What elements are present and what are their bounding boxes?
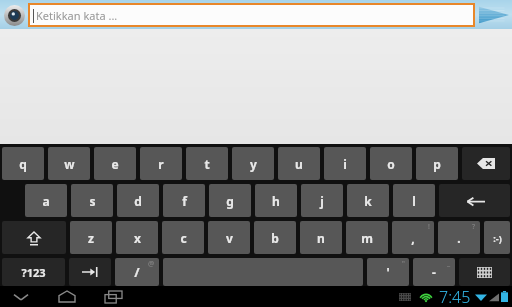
staticText: v	[226, 230, 233, 246]
button[interactable]: Backspace	[462, 147, 510, 180]
staticText: m	[361, 230, 373, 246]
staticText: c	[180, 230, 187, 246]
button[interactable]: a	[25, 184, 67, 217]
button[interactable]: App icon	[2, 3, 26, 27]
staticText: "	[402, 259, 405, 269]
staticText: b	[271, 230, 279, 246]
staticText: o	[387, 156, 395, 172]
staticText: ,	[411, 230, 415, 246]
staticText: g	[226, 193, 234, 209]
staticText: i	[343, 156, 347, 172]
staticText: k	[364, 193, 372, 209]
button[interactable]: w	[48, 147, 90, 180]
button[interactable]: ?123	[2, 258, 65, 286]
staticText: /	[134, 263, 140, 281]
staticText: h	[272, 193, 280, 209]
button[interactable]: Shift	[2, 221, 66, 254]
button[interactable]: u	[278, 147, 320, 180]
staticText: '	[386, 264, 390, 280]
button[interactable]: Enter	[439, 184, 510, 217]
staticText: _	[447, 259, 451, 269]
staticText: e	[111, 156, 119, 172]
staticText: q	[19, 156, 27, 172]
staticText: z	[88, 230, 94, 246]
button[interactable]: b	[254, 221, 296, 254]
staticText: 7:45	[439, 286, 471, 307]
staticText: @	[148, 259, 155, 269]
button[interactable]: z	[70, 221, 112, 254]
button[interactable]: Home	[54, 286, 80, 307]
button[interactable]: -	[413, 258, 455, 286]
staticText: !	[428, 222, 430, 232]
staticText: l	[412, 193, 416, 209]
button[interactable]: o	[370, 147, 412, 180]
staticText: x	[134, 230, 141, 246]
button[interactable]: r	[140, 147, 182, 180]
button[interactable]: x	[116, 221, 158, 254]
button[interactable]: i	[324, 147, 366, 180]
staticText: d	[134, 193, 142, 209]
button[interactable]: Recent apps	[100, 286, 126, 307]
button[interactable]: q	[2, 147, 44, 180]
button[interactable]: Change keyboard	[459, 258, 510, 286]
button[interactable]: t	[186, 147, 228, 180]
staticText: u	[295, 156, 303, 172]
staticText: n	[317, 230, 325, 246]
button[interactable]: v	[208, 221, 250, 254]
staticText: .	[457, 230, 461, 246]
button[interactable]: h	[255, 184, 297, 217]
button[interactable]: Tab	[69, 258, 111, 286]
button[interactable]: n	[300, 221, 342, 254]
button[interactable]: c	[162, 221, 204, 254]
button[interactable]: d	[117, 184, 159, 217]
button[interactable]: /	[115, 258, 159, 286]
button[interactable]: j	[301, 184, 343, 217]
staticText: f	[182, 193, 187, 209]
button[interactable]: '	[367, 258, 409, 286]
staticText: ?123	[21, 265, 46, 280]
button[interactable]: e	[94, 147, 136, 180]
button[interactable]: l	[393, 184, 435, 217]
staticText: :-)	[493, 232, 502, 244]
button[interactable]: Ketikkan kata ...	[28, 3, 475, 27]
staticText: y	[250, 156, 257, 172]
button[interactable]: m	[346, 221, 388, 254]
button[interactable]: g	[209, 184, 251, 217]
staticText: j	[320, 193, 324, 209]
staticText: -	[432, 264, 436, 280]
staticText: r	[158, 156, 164, 172]
button[interactable]: s	[71, 184, 113, 217]
button[interactable]: Hide keyboard	[8, 286, 34, 307]
staticText: Ketikkan kata ...	[36, 8, 118, 23]
staticText: ?	[472, 222, 476, 232]
button[interactable]: p	[416, 147, 458, 180]
button[interactable]: ,	[392, 221, 434, 254]
staticText: w	[64, 156, 75, 172]
staticText: p	[433, 156, 441, 172]
button[interactable]: k	[347, 184, 389, 217]
staticText: s	[89, 193, 96, 209]
button[interactable]: y	[232, 147, 274, 180]
button[interactable]: Send	[478, 1, 510, 28]
staticText: t	[204, 156, 210, 172]
button[interactable]: :-)	[484, 221, 510, 254]
button[interactable]: .	[438, 221, 480, 254]
button[interactable]: f	[163, 184, 205, 217]
staticText: a	[42, 193, 50, 209]
